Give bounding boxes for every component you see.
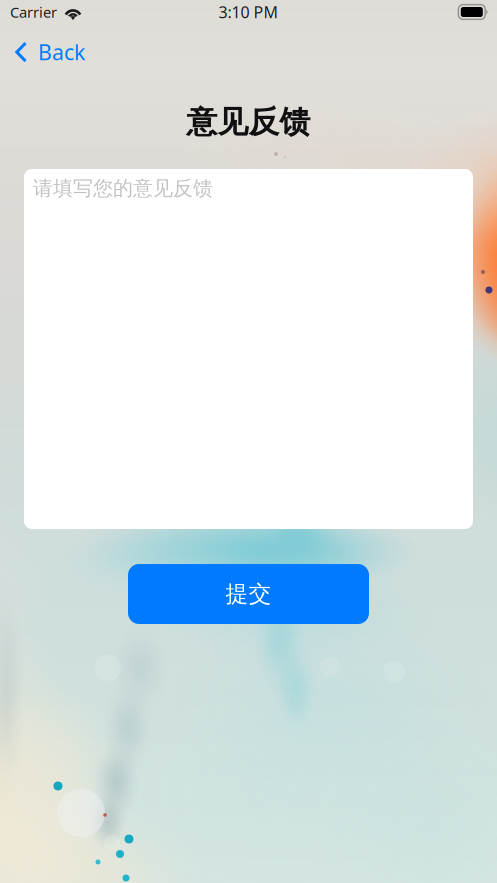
staticText: 意见反馈	[186, 103, 310, 141]
staticText: 3:10 PM	[218, 1, 278, 23]
button[interactable]: 提交	[128, 564, 369, 624]
staticText: Back	[38, 38, 85, 66]
staticText: Carrier	[10, 2, 57, 22]
button[interactable]: Back	[0, 30, 97, 74]
staticText: 提交	[225, 580, 271, 608]
staticText: 请填写您的意见反馈	[33, 176, 213, 201]
